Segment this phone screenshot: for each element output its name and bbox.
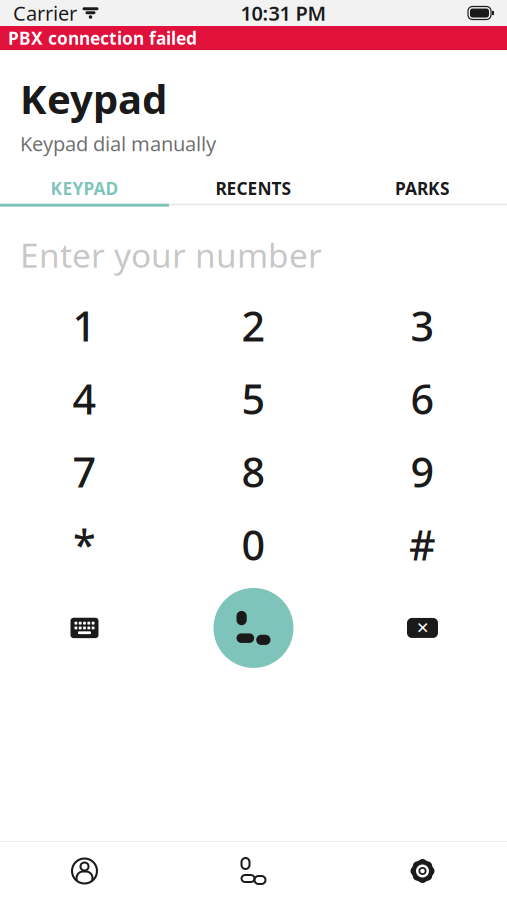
button[interactable]: Account (0, 842, 169, 900)
button[interactable]: Delete (338, 587, 507, 669)
staticText: 10:31 PM (240, 0, 326, 26)
staticText: 4 (72, 371, 96, 426)
staticText: 0 (241, 517, 265, 572)
staticText: KEYPAD (50, 177, 118, 200)
staticText: 8 (241, 444, 265, 499)
button[interactable]: # (338, 508, 507, 581)
staticText: 9 (410, 444, 434, 499)
button[interactable]: 5 (169, 362, 338, 435)
button[interactable]: KEYPAD (0, 173, 169, 207)
button[interactable]: * (0, 508, 169, 581)
button[interactable]: Show keyboard (0, 587, 169, 669)
button[interactable]: Call (169, 587, 338, 669)
button[interactable]: Settings (338, 842, 507, 900)
staticText: PBX connection failed (8, 26, 197, 49)
staticText: # (409, 517, 436, 572)
staticText: * (73, 517, 96, 572)
staticText: Keypad dial manually (20, 130, 216, 157)
button[interactable]: 9 (338, 435, 507, 508)
button[interactable]: Keypad (169, 842, 338, 900)
staticText: 6 (410, 371, 434, 426)
button[interactable]: 7 (0, 435, 169, 508)
button[interactable]: 8 (169, 435, 338, 508)
staticText: RECENTS (215, 177, 291, 200)
button[interactable]: 0 (169, 508, 338, 581)
button[interactable]: 3 (338, 289, 507, 362)
staticText: PARKS (395, 177, 450, 200)
staticText: Keypad (20, 72, 167, 125)
button[interactable]: 4 (0, 362, 169, 435)
staticText: 2 (241, 298, 265, 353)
staticText: Enter your number (20, 233, 322, 277)
button[interactable]: RECENTS (169, 173, 338, 207)
button[interactable]: PARKS (338, 173, 507, 207)
staticText: 5 (241, 371, 265, 426)
button[interactable]: 1 (0, 289, 169, 362)
button[interactable]: 6 (338, 362, 507, 435)
staticText: 3 (410, 298, 434, 353)
staticText: 7 (72, 444, 96, 499)
staticText: Carrier (13, 0, 77, 26)
staticText: ✕ (416, 619, 429, 637)
button[interactable]: 2 (169, 289, 338, 362)
staticText: 1 (72, 298, 96, 353)
